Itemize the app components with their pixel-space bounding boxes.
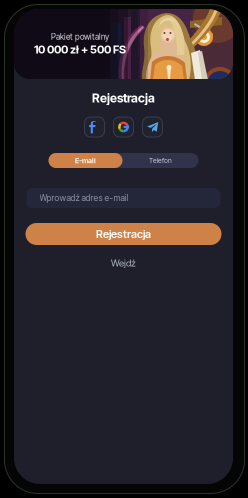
- staticText: Wejdź: [111, 257, 136, 269]
- button[interactable]: E-mail: [48, 153, 122, 168]
- button[interactable]: Rejestracja: [25, 223, 221, 245]
- button[interactable]: Telefon: [122, 153, 198, 168]
- button[interactable]: Continue with Google: [113, 117, 133, 137]
- staticText: Pakiet powitalny: [51, 32, 109, 42]
- staticText: Telefon: [149, 156, 172, 165]
- staticText: Rejestracja: [92, 91, 155, 105]
- staticText: Rejestracja: [96, 227, 151, 241]
- button[interactable]: Continue with Facebook: [84, 117, 104, 137]
- staticText: 10 000 zł + 500 FS: [34, 43, 126, 56]
- staticText: E-mail: [75, 156, 96, 165]
- button[interactable]: Wejdź: [98, 256, 148, 270]
- button[interactable]: Continue with Telegram: [142, 117, 162, 137]
- staticText: Wprowadź adres e-mail: [39, 193, 128, 203]
- button[interactable]: Wprowadź adres e-mail: [26, 188, 220, 208]
